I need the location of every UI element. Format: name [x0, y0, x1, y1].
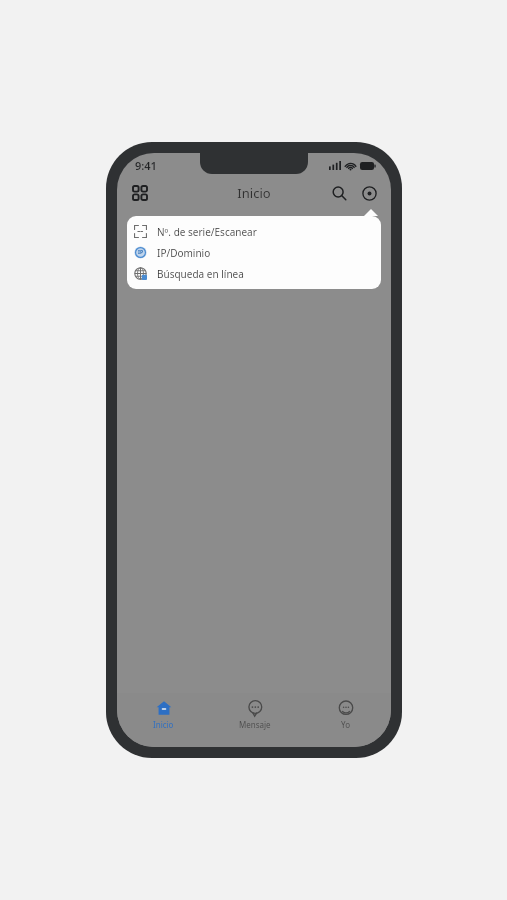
staticText: Nº. de serie/Escanear	[157, 225, 257, 239]
button[interactable]: Search	[324, 178, 354, 208]
button[interactable]: Mensaje	[209, 693, 300, 739]
button[interactable]: Add device	[354, 178, 384, 208]
button[interactable]: IP	[127, 242, 381, 263]
staticText: Búsqueda en línea	[157, 267, 244, 281]
staticText: 9:41	[135, 158, 157, 173]
staticText: Mensaje	[239, 719, 271, 730]
button[interactable]: Apps grid	[125, 178, 155, 208]
staticText: IP	[138, 249, 144, 256]
button[interactable]: Nº. de serie/Escanear	[127, 221, 381, 242]
button[interactable]: Yo	[300, 693, 391, 739]
staticText: Inicio	[237, 184, 271, 202]
staticText: Yo	[341, 719, 350, 730]
staticText: Inicio	[153, 719, 174, 730]
staticText: IP/Dominio	[157, 246, 211, 260]
button[interactable]: Inicio	[117, 693, 209, 739]
button[interactable]: Búsqueda en línea	[127, 263, 381, 284]
